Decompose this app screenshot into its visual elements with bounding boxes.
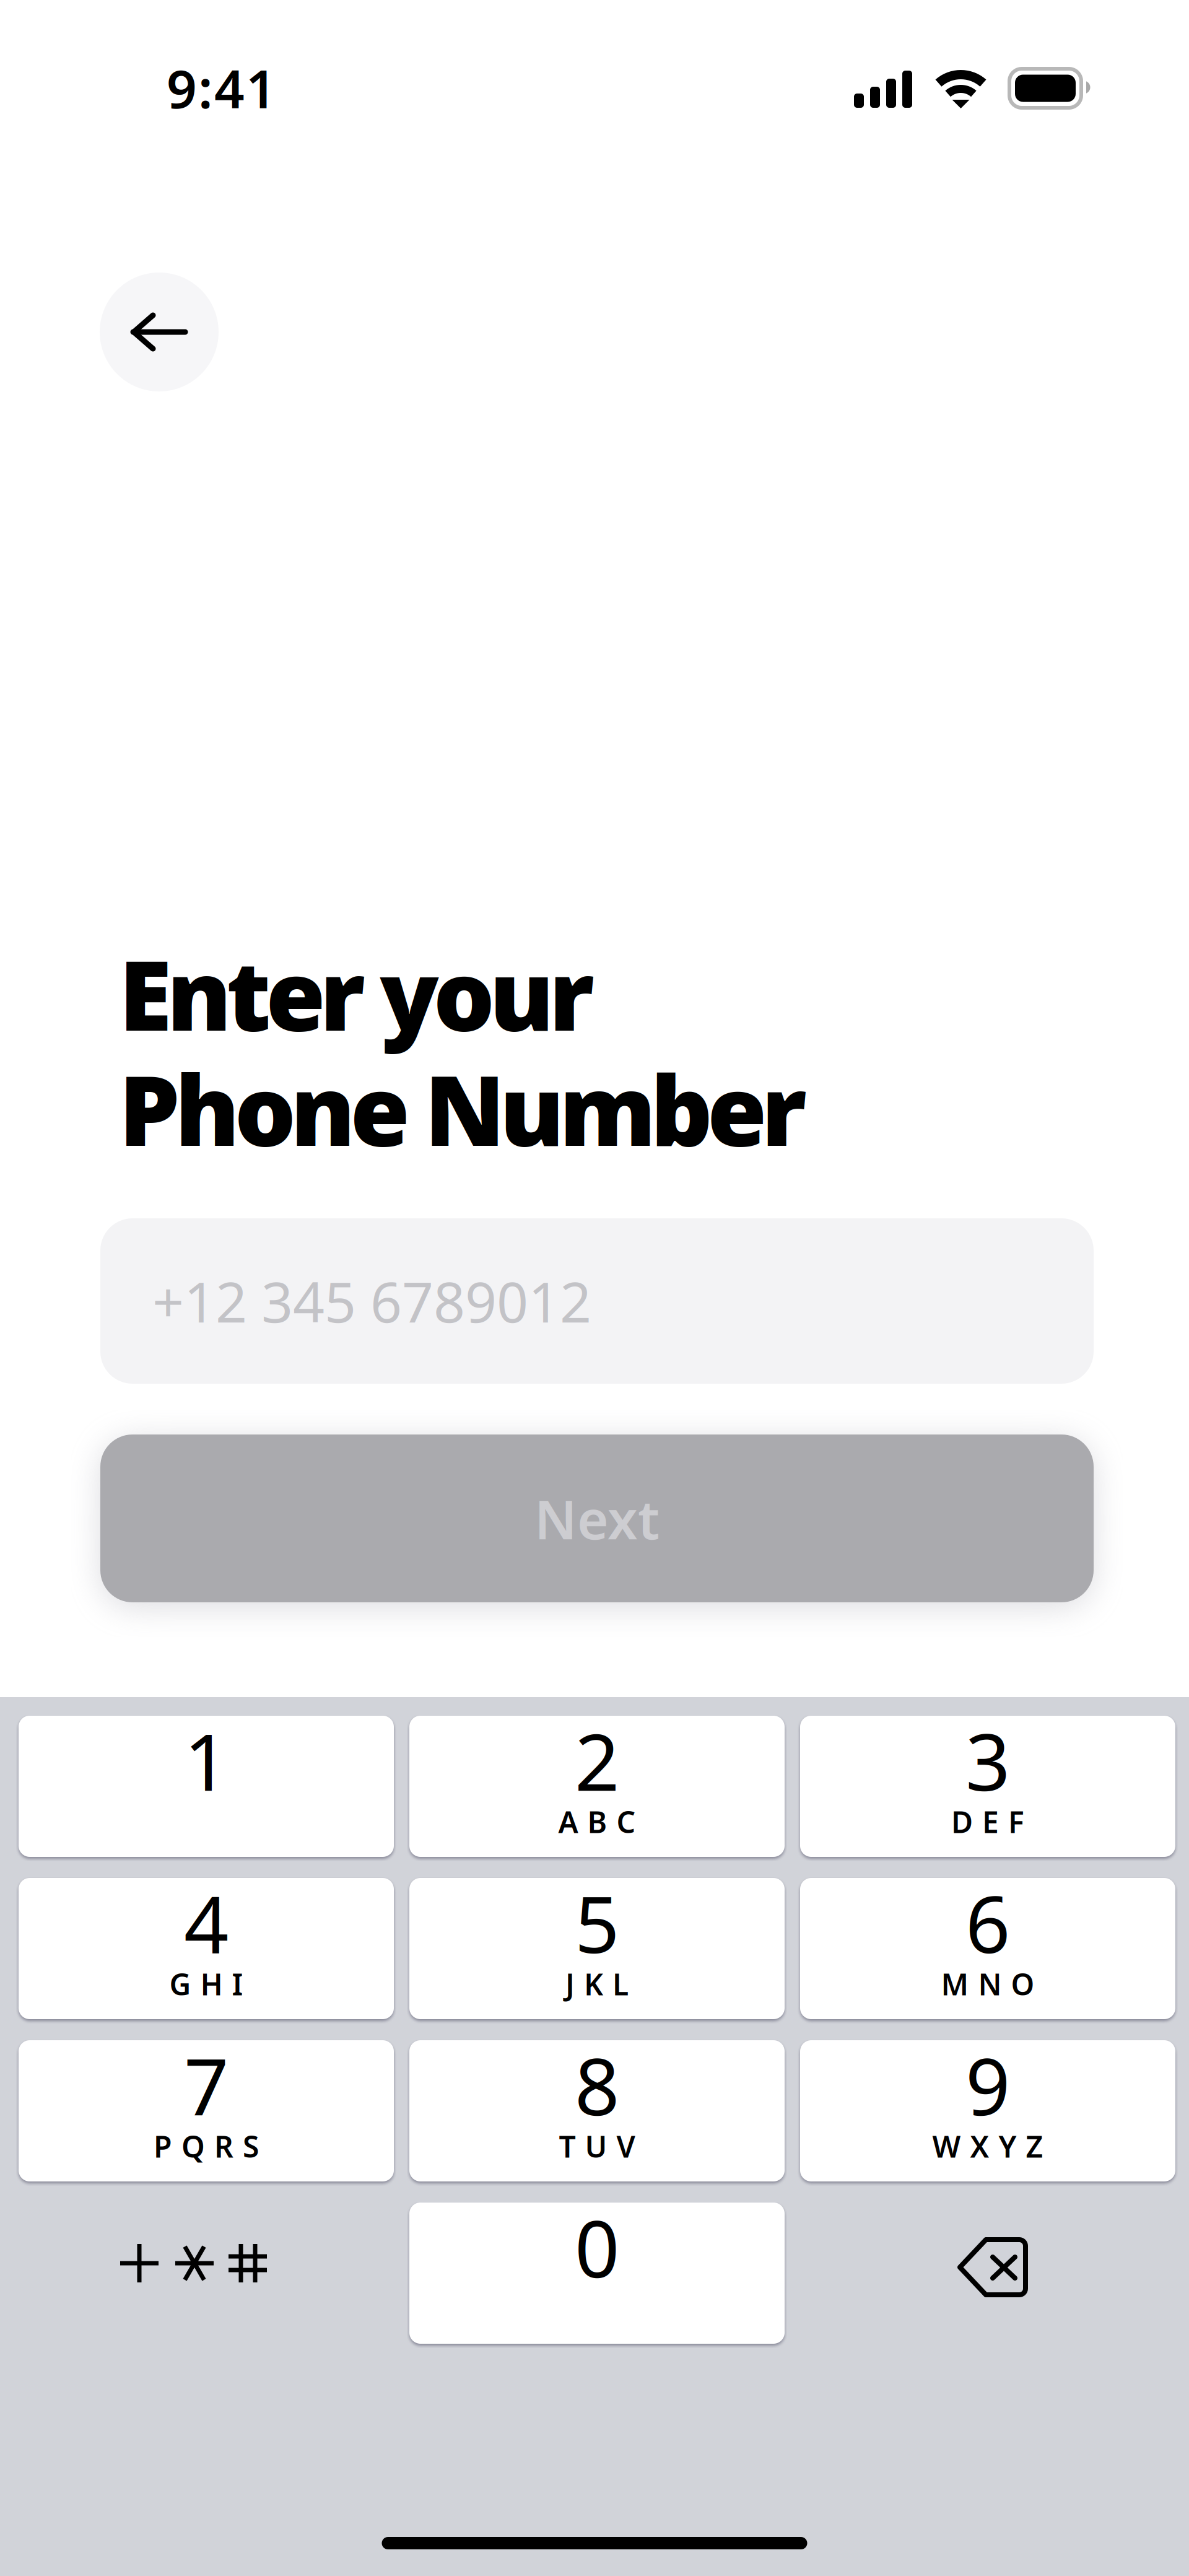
- button[interactable]: 9: [800, 2040, 1175, 2181]
- staticText: Next: [534, 1483, 660, 1554]
- button[interactable]: Symbols: [19, 2203, 394, 2344]
- button[interactable]: Back: [100, 273, 219, 391]
- button[interactable]: 1: [19, 1716, 394, 1857]
- staticText: 5: [575, 1870, 619, 1975]
- button[interactable]: 4: [19, 1878, 394, 2019]
- button[interactable]: 6: [800, 1878, 1175, 2019]
- staticText: MNO: [941, 1964, 1034, 2004]
- button[interactable]: 0: [409, 2203, 785, 2344]
- staticText: 7: [184, 2033, 229, 2137]
- button[interactable]: 7: [19, 2040, 394, 2181]
- staticText: 0: [575, 2195, 619, 2299]
- staticText: 8: [575, 2033, 619, 2137]
- staticText: Enter your: [119, 929, 594, 1057]
- button[interactable]: Next: [100, 1434, 1094, 1602]
- staticText: TUV: [559, 2126, 635, 2166]
- staticText: JKL: [565, 1964, 629, 2004]
- staticText: GHI: [169, 1964, 243, 2004]
- button[interactable]: 2: [409, 1716, 785, 1857]
- staticText: 9:41: [167, 53, 276, 123]
- staticText: +12 345 6789012: [152, 1264, 591, 1338]
- button[interactable]: Delete: [800, 2203, 1175, 2344]
- staticText: 1: [184, 1708, 229, 1812]
- staticText: Phone Number: [119, 1044, 807, 1173]
- staticText: 9: [965, 2033, 1010, 2137]
- staticText: WXYZ: [932, 2126, 1043, 2166]
- button[interactable]: 5: [409, 1878, 785, 2019]
- staticText: DEF: [951, 1802, 1024, 1841]
- button[interactable]: 8: [409, 2040, 785, 2181]
- button[interactable]: 3: [800, 1716, 1175, 1857]
- staticText: 6: [965, 1870, 1010, 1975]
- staticText: 3: [965, 1708, 1010, 1812]
- staticText: PQRS: [154, 2126, 259, 2166]
- staticText: ABC: [558, 1802, 636, 1841]
- staticText: 4: [184, 1870, 229, 1975]
- staticText: 2: [575, 1708, 619, 1812]
